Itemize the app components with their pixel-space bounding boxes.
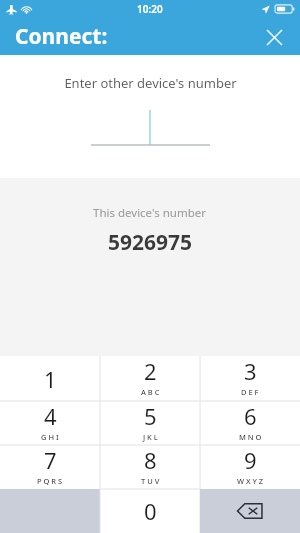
- staticText: D E F: [241, 387, 259, 397]
- button[interactable]: 4: [0, 401, 100, 445]
- staticText: A B C: [141, 387, 160, 397]
- button[interactable]: 7: [0, 445, 100, 489]
- button[interactable]: 9: [200, 445, 300, 489]
- button[interactable]: 2: [100, 356, 200, 401]
- staticText: 6: [244, 401, 257, 431]
- staticText: P Q R S: [37, 476, 63, 486]
- button[interactable]: Close: [258, 21, 290, 53]
- button[interactable]: 8: [100, 445, 200, 489]
- staticText: 3: [244, 356, 257, 386]
- staticText: 9: [244, 445, 257, 475]
- staticText: 5: [144, 401, 157, 431]
- button[interactable]: 0: [100, 489, 200, 533]
- button[interactable]: [0, 55, 300, 178]
- button[interactable]: 1: [0, 356, 100, 401]
- staticText: 5926975: [108, 228, 193, 257]
- staticText: 4: [44, 401, 57, 431]
- staticText: 8: [144, 445, 157, 475]
- staticText: 2: [144, 356, 157, 386]
- staticText: This device's number: [93, 205, 207, 221]
- staticText: G H I: [41, 432, 59, 442]
- button[interactable]: 5: [100, 401, 200, 445]
- staticText: Connect:: [15, 22, 108, 51]
- staticText: J K L: [143, 432, 158, 442]
- staticText: 10:20: [137, 2, 163, 16]
- staticText: 7: [44, 445, 57, 475]
- button[interactable]: Backspace: [200, 489, 300, 533]
- button[interactable]: 6: [200, 401, 300, 445]
- staticText: M N O: [239, 432, 262, 442]
- staticText: 1: [44, 364, 57, 394]
- staticText: Enter other device's number: [64, 74, 237, 92]
- button[interactable]: 3: [200, 356, 300, 401]
- staticText: 0: [144, 496, 157, 526]
- staticText: T U V: [141, 476, 160, 486]
- staticText: W X Y Z: [237, 476, 264, 486]
